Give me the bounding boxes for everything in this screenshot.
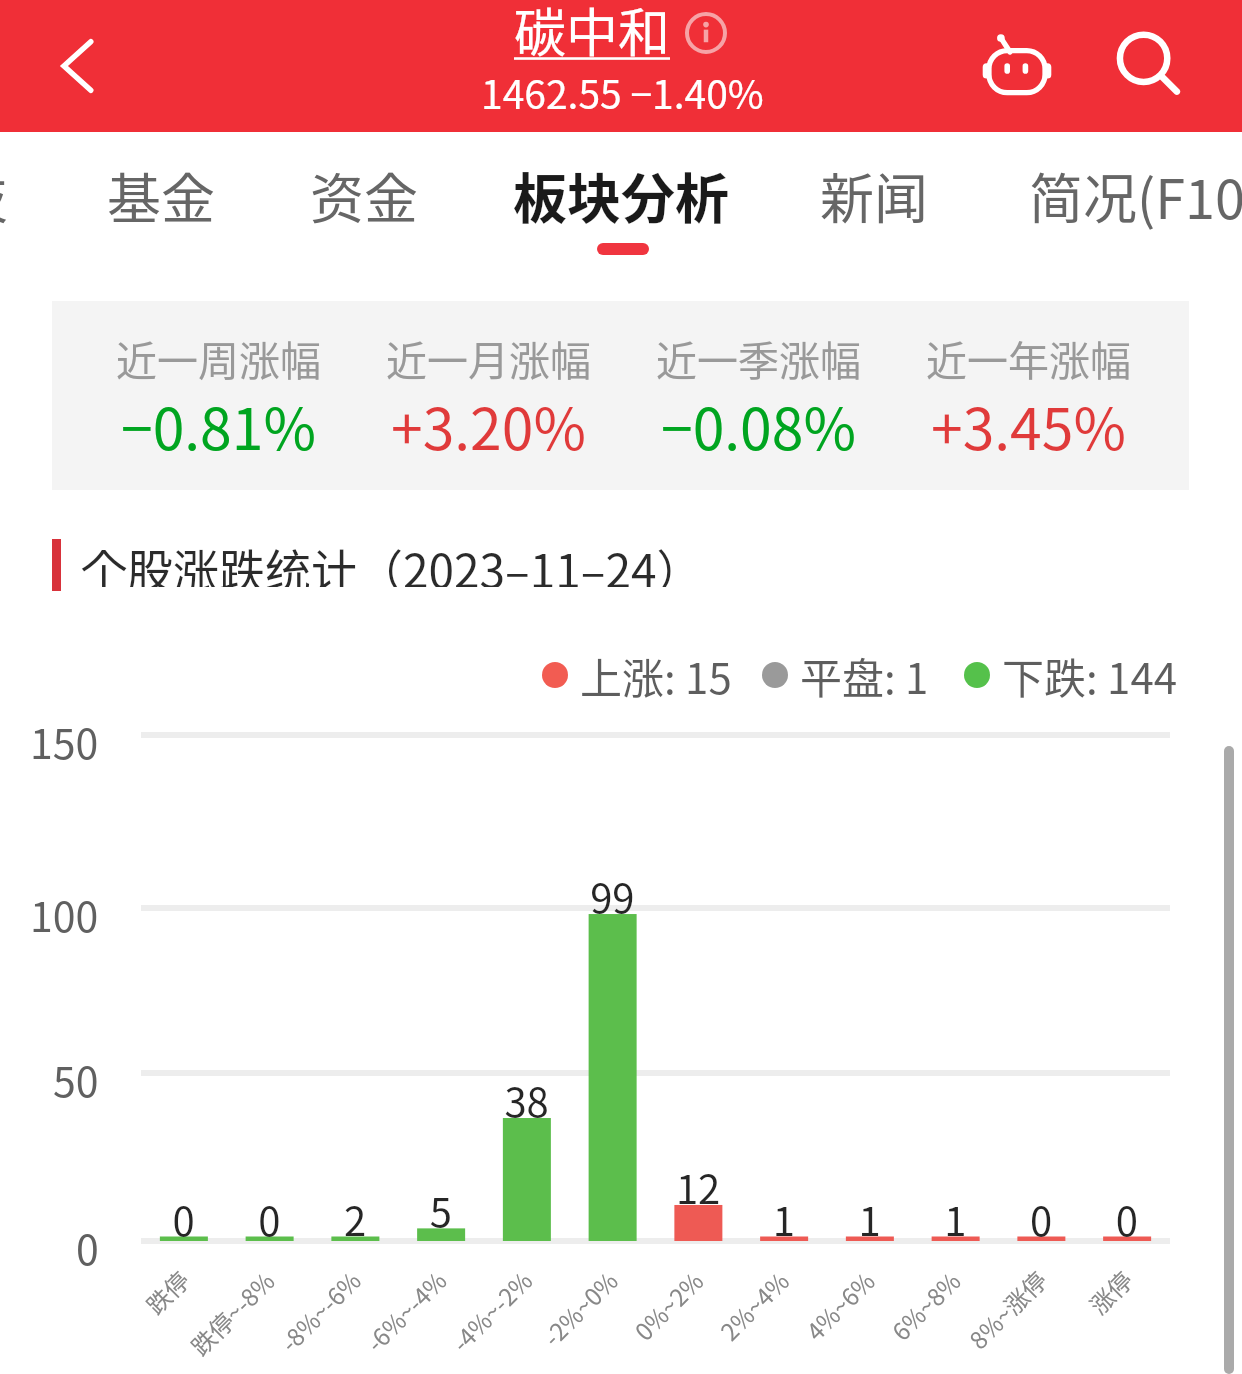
staticText: −0.81% bbox=[121, 384, 316, 467]
button[interactable]: 个股涨跌统计（2023–11–24） bbox=[52, 539, 752, 591]
staticText: 碳中和 bbox=[514, 0, 671, 67]
staticText: +3.45% bbox=[931, 384, 1126, 467]
staticText: 个股涨跌统计（2023–11–24） bbox=[81, 535, 703, 587]
staticText: 近一周涨幅 bbox=[116, 328, 321, 387]
staticText: 基金 bbox=[107, 156, 215, 234]
staticText: 板块分析 bbox=[513, 156, 729, 234]
button[interactable]: 上涨: 15 bbox=[542, 640, 732, 710]
button[interactable]: AI assistant bbox=[950, 0, 1082, 132]
button[interactable]: 新闻 bbox=[820, 132, 928, 272]
staticText: +3.20% bbox=[391, 384, 586, 467]
button[interactable]: 技 bbox=[0, 132, 8, 272]
staticText: 简况(F10 bbox=[1029, 156, 1242, 234]
staticText: 近一年涨幅 bbox=[926, 328, 1131, 387]
button[interactable]: 近一季涨幅 bbox=[623, 301, 893, 490]
staticText: 下跌: 144 bbox=[1002, 645, 1178, 706]
button[interactable]: 近一年涨幅 bbox=[893, 301, 1163, 490]
button[interactable]: Search bbox=[1084, 0, 1216, 132]
button[interactable]: 资金 bbox=[310, 132, 418, 272]
staticText: 1462.55 −1.40% bbox=[481, 64, 764, 120]
staticText: 近一季涨幅 bbox=[656, 328, 861, 387]
staticText: 平盘: 1 bbox=[800, 645, 929, 706]
staticText: 上涨: 15 bbox=[580, 645, 732, 706]
button[interactable]: 简况(F10 bbox=[1029, 132, 1242, 272]
button[interactable]: 平盘: 1 bbox=[762, 640, 929, 710]
button[interactable]: 碳中和 bbox=[440, 0, 800, 132]
staticText: 资金 bbox=[310, 156, 418, 234]
button[interactable]: 近一周涨幅 bbox=[83, 301, 353, 490]
staticText: −0.08% bbox=[661, 384, 856, 467]
staticText: 技 bbox=[0, 156, 8, 234]
button[interactable]: 基金 bbox=[107, 132, 215, 272]
button[interactable]: 板块分析 bbox=[513, 132, 729, 272]
button[interactable]: Back bbox=[0, 0, 160, 132]
button[interactable]: 下跌: 144 bbox=[964, 640, 1178, 710]
staticText: 近一月涨幅 bbox=[386, 328, 591, 387]
button[interactable]: 近一月涨幅 bbox=[353, 301, 623, 490]
staticText: 新闻 bbox=[820, 156, 928, 234]
